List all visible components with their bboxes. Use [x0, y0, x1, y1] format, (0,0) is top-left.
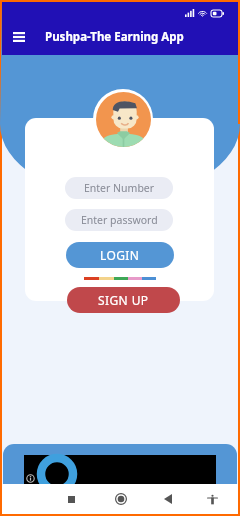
staticText: Pushpa-The Earning App	[45, 29, 184, 45]
button[interactable]: Home	[108, 486, 134, 512]
button[interactable]: LOGIN	[66, 242, 174, 268]
button[interactable]: Enter Number	[65, 177, 173, 199]
staticText: SIGN UP	[98, 292, 149, 308]
staticText: LOGIN	[100, 247, 140, 263]
staticText: Enter Number	[84, 181, 155, 195]
button[interactable]: Ad information	[26, 474, 35, 483]
button[interactable]: Enter password	[65, 209, 173, 231]
button[interactable]: Accessibility	[199, 486, 225, 512]
button[interactable]: Recents	[58, 486, 84, 512]
staticText: Enter password	[81, 213, 158, 227]
button[interactable]: SIGN UP	[67, 287, 180, 313]
button[interactable]: Back	[155, 486, 181, 512]
button[interactable]: Open navigation menu	[8, 26, 30, 48]
